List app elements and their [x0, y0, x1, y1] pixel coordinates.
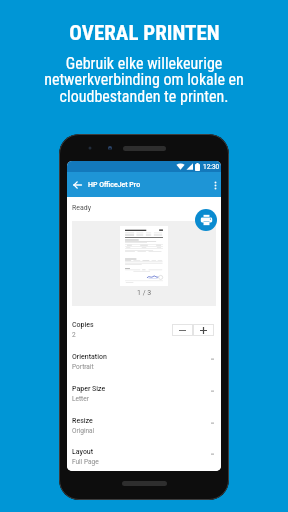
- staticText: HP OfficeJet Pro: [88, 181, 141, 189]
- button[interactable]: Copies: [67, 314, 221, 346]
- staticText: Letter: [72, 395, 89, 403]
- button[interactable]: Decrease copies: [172, 324, 193, 336]
- staticText: Copies: [72, 321, 94, 329]
- staticText: 2: [72, 331, 76, 339]
- staticText: OVERAL PRINTEN: [69, 21, 220, 46]
- staticText: Portrait: [72, 363, 94, 371]
- staticText: Ready: [72, 204, 92, 212]
- staticText: 12:30: [203, 163, 220, 171]
- staticText: Resize: [72, 417, 93, 425]
- staticText: 1 / 3: [137, 289, 152, 297]
- button[interactable]: Orientation: [67, 346, 221, 378]
- staticText: Paper Size: [72, 385, 106, 393]
- button[interactable]: Increase copies: [193, 324, 214, 336]
- button[interactable]: Print: [195, 209, 217, 231]
- button[interactable]: Layout: [67, 442, 221, 471]
- staticText: Orientation: [72, 353, 107, 361]
- staticText: Gebruik elke willekeurige netwerkverbind…: [44, 54, 244, 106]
- button[interactable]: Back: [68, 176, 86, 194]
- button[interactable]: More options: [210, 177, 221, 193]
- button[interactable]: Paper Size: [67, 378, 221, 410]
- staticText: Layout: [72, 448, 94, 456]
- staticText: Original: [72, 427, 95, 435]
- button[interactable]: Resize: [67, 410, 221, 442]
- staticText: Full Page: [72, 458, 99, 466]
